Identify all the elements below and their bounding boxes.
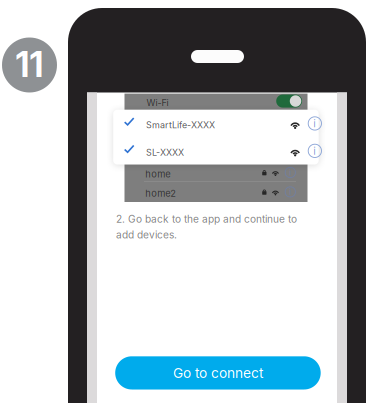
- staticText: i: [289, 168, 291, 177]
- staticText: 2. Go back to the app and continue to: [116, 213, 297, 225]
- button[interactable]: SmartLife-XXXX: [113, 110, 319, 137]
- staticText: i: [313, 144, 316, 157]
- staticText: home2: [145, 188, 176, 199]
- staticText: 11: [15, 43, 43, 85]
- staticText: Go to connect: [173, 365, 263, 381]
- staticText: i: [289, 187, 291, 197]
- button[interactable]: SL-XXXX: [113, 137, 319, 164]
- staticText: Wi-Fi: [146, 97, 168, 108]
- staticText: SL-XXXX: [146, 147, 184, 158]
- staticText: i: [313, 117, 316, 130]
- staticText: home: [145, 168, 170, 180]
- button[interactable]: Go to connect: [115, 356, 321, 389]
- staticText: add devices.: [116, 229, 177, 241]
- staticText: SmartLife-XXXX: [146, 120, 215, 130]
